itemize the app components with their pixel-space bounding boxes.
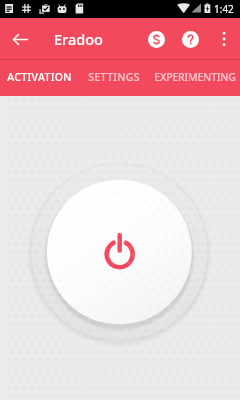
staticText: 1:42: [214, 2, 234, 16]
staticText: EXPERIMENTING: [154, 70, 236, 84]
button[interactable]: EXPERIMENTING: [150, 60, 240, 96]
staticText: Eradoo: [54, 29, 103, 49]
button[interactable]: Help: [174, 18, 206, 60]
button[interactable]: Power: [47, 179, 192, 324]
button[interactable]: Back: [6, 18, 35, 60]
button[interactable]: More options: [208, 18, 239, 60]
button[interactable]: SETTINGS: [78, 60, 150, 96]
staticText: SETTINGS: [88, 70, 140, 84]
staticText: ACTIVATION: [7, 70, 72, 84]
button[interactable]: ACTIVATION: [0, 60, 78, 96]
button[interactable]: Donate: [140, 18, 172, 60]
